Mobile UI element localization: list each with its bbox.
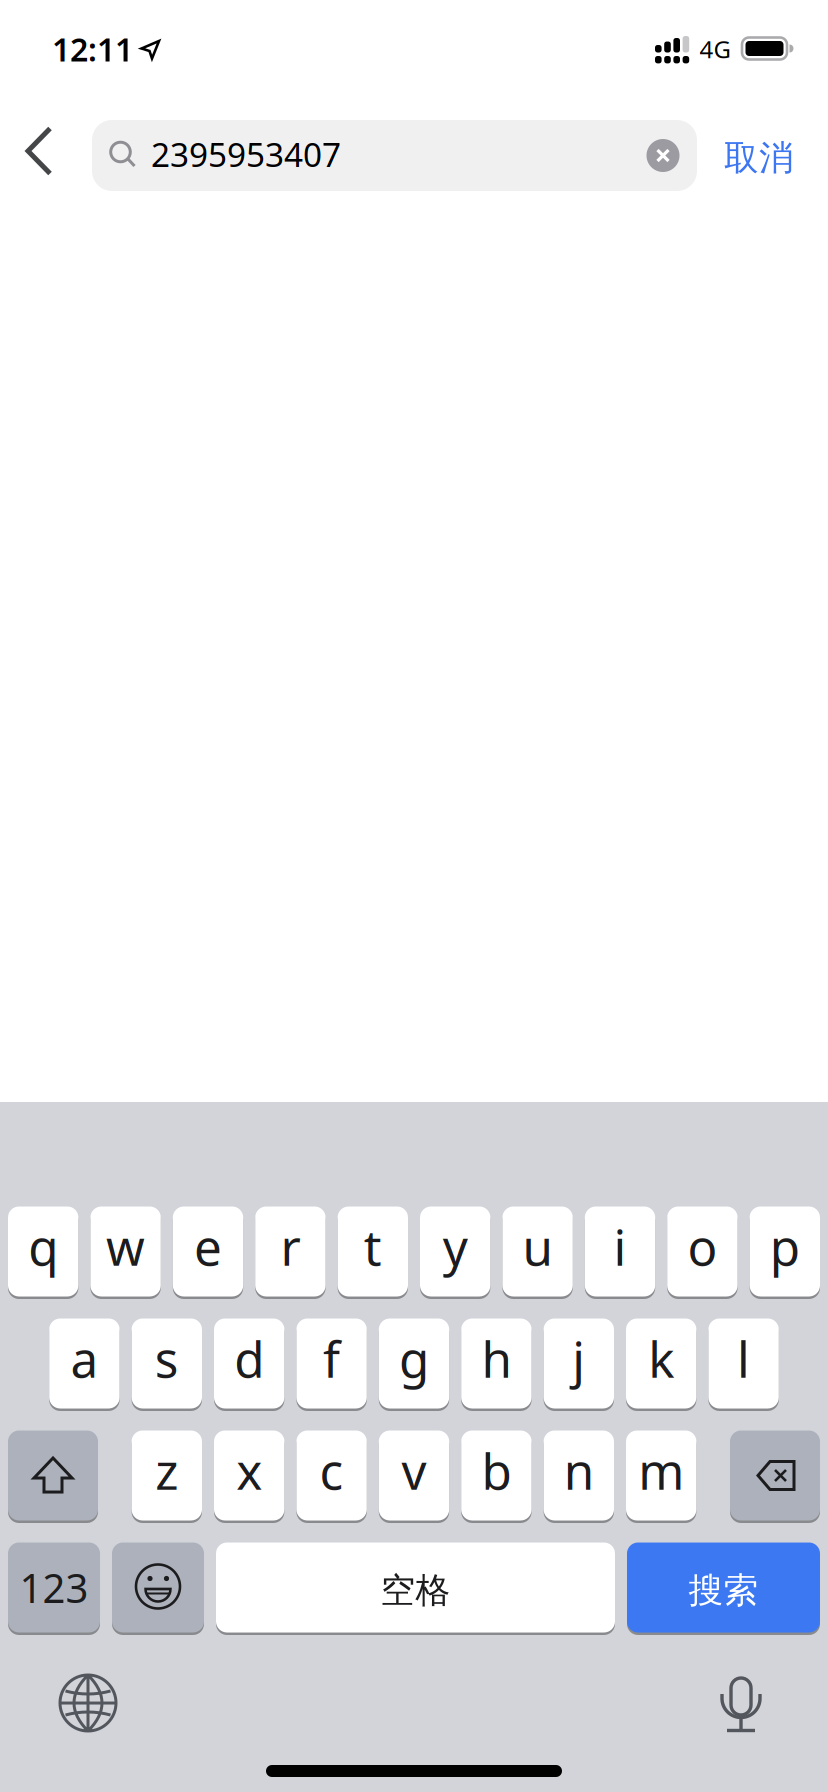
- button[interactable]: Clear text: [646, 139, 679, 172]
- button[interactable]: k: [626, 1317, 696, 1410]
- button[interactable]: e: [173, 1205, 243, 1298]
- button[interactable]: h: [461, 1317, 532, 1410]
- staticText: 123: [19, 1561, 88, 1614]
- staticText: m: [638, 1438, 684, 1503]
- staticText: t: [364, 1214, 382, 1279]
- staticText: h: [481, 1326, 511, 1391]
- button[interactable]: c: [296, 1429, 367, 1522]
- button[interactable]: l: [708, 1317, 779, 1410]
- staticText: f: [323, 1326, 340, 1391]
- staticText: u: [523, 1214, 553, 1279]
- staticText: o: [687, 1214, 717, 1279]
- staticText: d: [234, 1326, 264, 1391]
- button[interactable]: u: [502, 1205, 573, 1298]
- staticText: j: [572, 1326, 585, 1391]
- staticText: p: [770, 1214, 800, 1279]
- button[interactable]: Shift: [8, 1429, 98, 1522]
- button[interactable]: Next keyboard: [58, 1673, 118, 1733]
- button[interactable]: q: [8, 1205, 78, 1298]
- staticText: l: [737, 1326, 750, 1391]
- button[interactable]: a: [49, 1317, 120, 1410]
- staticText: c: [320, 1438, 344, 1503]
- button[interactable]: 空格: [216, 1541, 615, 1634]
- staticText: 搜索: [688, 1569, 758, 1612]
- staticText: x: [236, 1438, 262, 1503]
- button[interactable]: d: [214, 1317, 284, 1410]
- button[interactable]: Back: [23, 125, 57, 176]
- staticText: y: [443, 1214, 468, 1279]
- button[interactable]: z: [132, 1429, 202, 1522]
- button[interactable]: b: [461, 1429, 532, 1522]
- staticText: i: [613, 1214, 626, 1279]
- staticText: r: [280, 1214, 300, 1279]
- staticText: 空格: [380, 1569, 450, 1612]
- button[interactable]: w: [90, 1205, 161, 1298]
- staticText: 2395953407: [151, 132, 341, 176]
- staticText: e: [194, 1214, 222, 1279]
- staticText: 取消: [724, 137, 794, 179]
- button[interactable]: Emoji: [112, 1541, 204, 1634]
- button[interactable]: f: [296, 1317, 367, 1410]
- button[interactable]: o: [667, 1205, 738, 1298]
- button[interactable]: r: [255, 1205, 326, 1298]
- staticText: v: [401, 1438, 426, 1503]
- button[interactable]: v: [379, 1429, 449, 1522]
- button[interactable]: n: [544, 1429, 614, 1522]
- button[interactable]: s: [132, 1317, 202, 1410]
- staticText: b: [481, 1438, 511, 1503]
- button[interactable]: 取消: [724, 137, 794, 179]
- button[interactable]: j: [544, 1317, 614, 1410]
- button[interactable]: i: [585, 1205, 655, 1298]
- button[interactable]: 搜索: [627, 1541, 820, 1634]
- button[interactable]: Dictation: [719, 1676, 763, 1736]
- staticText: 4G: [699, 33, 730, 65]
- staticText: z: [155, 1438, 178, 1503]
- staticText: q: [28, 1214, 58, 1279]
- button[interactable]: 123: [8, 1541, 100, 1634]
- staticText: a: [70, 1326, 98, 1391]
- button[interactable]: p: [750, 1205, 820, 1298]
- staticText: g: [399, 1326, 429, 1391]
- button[interactable]: t: [338, 1205, 408, 1298]
- button[interactable]: x: [214, 1429, 284, 1522]
- staticText: n: [564, 1438, 594, 1503]
- button[interactable]: y: [420, 1205, 490, 1298]
- staticText: w: [106, 1214, 145, 1279]
- button[interactable]: m: [626, 1429, 696, 1522]
- staticText: s: [155, 1326, 179, 1391]
- button[interactable]: g: [379, 1317, 449, 1410]
- button[interactable]: Delete: [730, 1429, 820, 1522]
- staticText: 12:11: [52, 28, 133, 70]
- staticText: k: [648, 1326, 674, 1391]
